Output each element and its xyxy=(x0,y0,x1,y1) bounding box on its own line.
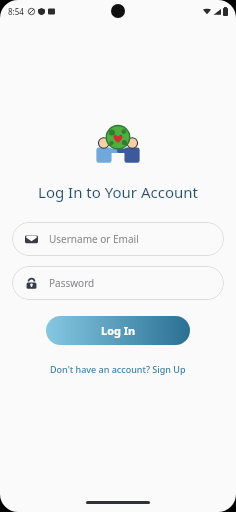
staticText: Log In xyxy=(101,323,136,338)
button[interactable]: Don't have an account? Sign Up xyxy=(46,361,190,377)
staticText: Username or Email xyxy=(49,232,139,246)
staticText: Log In to Your Account xyxy=(38,182,198,202)
staticText: Don't have an account? Sign Up xyxy=(50,363,186,375)
button[interactable]: Password xyxy=(12,266,224,300)
staticText: 8:54 xyxy=(8,6,24,17)
other: App logo xyxy=(95,120,141,166)
button[interactable]: Log In xyxy=(46,316,190,345)
button[interactable]: Username or Email xyxy=(12,222,224,256)
staticText: Password xyxy=(49,276,95,290)
